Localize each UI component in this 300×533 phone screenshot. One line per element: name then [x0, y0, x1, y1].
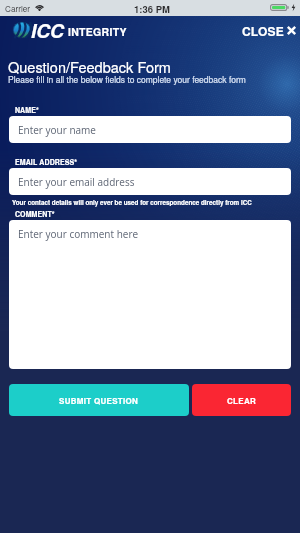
staticText: Enter your email address — [18, 175, 135, 189]
staticText: Enter your comment here — [18, 227, 139, 241]
staticText: Enter your name — [18, 123, 96, 137]
button[interactable]: Enter your email address — [9, 168, 291, 195]
staticText: EMAIL ADDRESS* — [15, 157, 78, 167]
button[interactable]: Enter your comment here — [9, 220, 291, 369]
button[interactable]: CLEAR — [192, 384, 291, 416]
staticText: ICC — [31, 17, 64, 44]
staticText: Please fill in all the below fields to c… — [8, 73, 246, 85]
staticText: Your contact details will only ever be u… — [12, 198, 252, 207]
button[interactable]: SUBMIT QUESTION — [9, 384, 189, 416]
button[interactable]: Close — [240, 21, 298, 40]
staticText: INTEGRITY — [68, 24, 127, 39]
staticText: CLOSE — [242, 22, 284, 39]
staticText: COMMENT* — [15, 209, 55, 219]
staticText: 1:36 PM — [134, 2, 170, 16]
staticText: SUBMIT QUESTION — [59, 395, 139, 406]
staticText: Carrier — [5, 3, 31, 15]
staticText: CLEAR — [227, 395, 257, 406]
staticText: NAME* — [15, 105, 39, 115]
staticText: Question/Feedback Form — [8, 56, 171, 77]
button[interactable]: Enter your name — [9, 116, 291, 143]
